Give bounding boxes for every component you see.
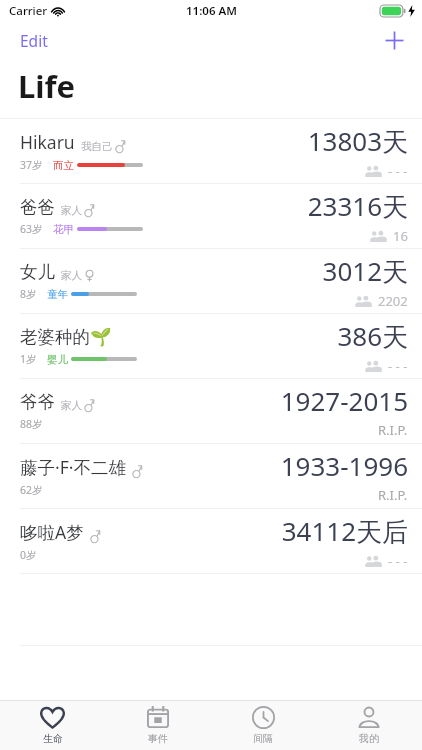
staticText: 63岁 xyxy=(20,222,43,236)
button[interactable]: 间隔 xyxy=(210,701,316,750)
button[interactable]: 爷爷 xyxy=(0,379,422,443)
staticText: 而立 xyxy=(53,159,74,172)
staticText: 老婆种的🌱 xyxy=(20,326,112,348)
staticText: 1933-1996 xyxy=(280,448,408,483)
button[interactable]: Add xyxy=(367,26,422,55)
staticText: 8岁 xyxy=(20,287,37,301)
staticText: 88岁 xyxy=(20,417,43,431)
staticText: 1岁 xyxy=(20,352,37,366)
staticText: 家人 xyxy=(61,204,82,217)
staticText: 3012天 xyxy=(322,253,408,289)
staticText: 0岁 xyxy=(20,548,37,562)
staticText: - - - xyxy=(388,357,408,375)
staticText: R.I.P. xyxy=(378,421,408,439)
button[interactable]: 我的 xyxy=(316,701,422,750)
staticText: 家人 xyxy=(61,269,82,282)
staticText: 1927-2015 xyxy=(280,383,408,418)
button[interactable]: 女儿 xyxy=(0,249,422,313)
button[interactable]: 事件 xyxy=(105,701,210,750)
button[interactable]: 藤子·F·不二雄 xyxy=(0,444,422,508)
staticText: - - - xyxy=(388,162,408,180)
button[interactable]: Hikaru xyxy=(0,119,422,183)
staticText: 37岁 xyxy=(20,158,43,172)
button[interactable]: 老婆种的🌱 xyxy=(0,314,422,378)
staticText: 2202 xyxy=(378,292,408,310)
staticText: Life xyxy=(18,65,76,107)
button[interactable]: 哆啦A梦 xyxy=(0,509,422,573)
staticText: 花甲 xyxy=(53,223,74,236)
staticText: 11:06 AM xyxy=(186,3,237,19)
staticText: 哆啦A梦 xyxy=(20,520,84,544)
staticText: 13803天 xyxy=(307,123,408,159)
staticText: 16 xyxy=(393,227,408,245)
staticText: 生命 xyxy=(43,732,63,745)
staticText: 家人 xyxy=(61,399,82,412)
staticText: 童年 xyxy=(47,288,68,301)
staticText: 我自己 xyxy=(81,140,113,153)
staticText: 藤子·F·不二雄 xyxy=(20,455,126,479)
staticText: 婴儿 xyxy=(47,353,68,366)
staticText: 我的 xyxy=(359,732,379,745)
button[interactable]: Edit xyxy=(0,24,68,57)
staticText: 34112天后 xyxy=(281,513,408,549)
staticText: - - - xyxy=(388,552,408,570)
button[interactable]: 爸爸 xyxy=(0,184,422,248)
staticText: Hikaru xyxy=(20,130,75,154)
staticText: 23316天 xyxy=(307,188,408,224)
staticText: 女儿 xyxy=(20,261,55,283)
staticText: 62岁 xyxy=(20,483,43,497)
staticText: Carrier xyxy=(9,3,48,19)
staticText: 爸爸 xyxy=(20,196,55,218)
staticText: 爷爷 xyxy=(20,391,55,413)
staticText: 间隔 xyxy=(253,732,273,745)
staticText: 386天 xyxy=(337,318,408,354)
staticText: R.I.P. xyxy=(378,486,408,504)
staticText: 事件 xyxy=(148,732,168,745)
button[interactable]: 生命 xyxy=(0,701,105,750)
staticText: Edit xyxy=(20,30,48,51)
